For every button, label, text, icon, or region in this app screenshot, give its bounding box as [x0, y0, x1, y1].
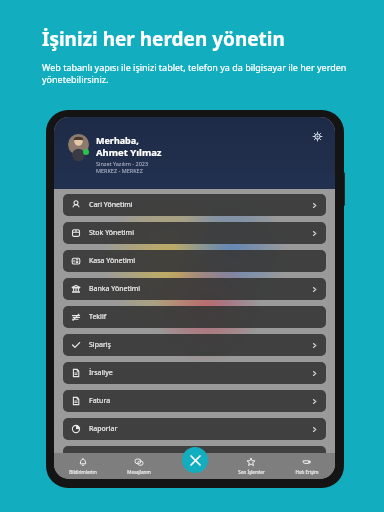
- button[interactable]: Teklif: [63, 306, 326, 328]
- staticText: Fatura: [89, 396, 111, 406]
- staticText: Sinzet Yazılım - 2023: [96, 160, 149, 167]
- button[interactable]: Raporlar: [63, 418, 326, 440]
- staticText: İrsaliye: [89, 368, 113, 378]
- staticText: Raporlar: [89, 424, 118, 434]
- staticText: Teklif: [89, 312, 107, 322]
- button[interactable]: Son İşlemler: [223, 453, 279, 479]
- button[interactable]: İrsaliye: [63, 362, 326, 384]
- button[interactable]: Kapat: [182, 447, 208, 473]
- staticText: Banka Yönetimi: [89, 284, 141, 294]
- button[interactable]: [63, 446, 326, 468]
- staticText: Hızlı Erişim: [295, 469, 319, 475]
- button[interactable]: Bildirimlerim: [54, 453, 111, 479]
- button[interactable]: Banka Yönetimi: [63, 278, 326, 300]
- staticText: Ahmet Yılmaz: [96, 146, 162, 159]
- staticText: Kasa Yönetimi: [89, 256, 136, 266]
- staticText: Merhaba,: [96, 134, 139, 146]
- button[interactable]: Hızlı Erişim: [279, 453, 335, 479]
- staticText: Son İşlemler: [238, 469, 265, 475]
- staticText: Cari Yönetimi: [89, 200, 133, 210]
- staticText: Mesajlarım: [127, 469, 151, 475]
- staticText: Stok Yönetimi: [89, 228, 134, 238]
- button[interactable]: Cari Yönetimi: [63, 194, 326, 216]
- button[interactable]: Stok Yönetimi: [63, 222, 326, 244]
- staticText: Sipariş: [89, 340, 111, 350]
- button[interactable]: Kasa Yönetimi: [63, 250, 326, 272]
- staticText: MERKEZ - MERKEZ: [96, 167, 143, 174]
- button[interactable]: Mesajlarım: [111, 453, 167, 479]
- button[interactable]: Fatura: [63, 390, 326, 412]
- staticText: Web tabanlı yapısı ile işinizi tablet, t…: [42, 61, 356, 86]
- staticText: İşinizi her herden yönetin: [42, 26, 285, 52]
- button[interactable]: Sipariş: [63, 334, 326, 356]
- button[interactable]: Ayarlar: [310, 129, 324, 143]
- staticText: Bildirimlerim: [69, 469, 97, 475]
